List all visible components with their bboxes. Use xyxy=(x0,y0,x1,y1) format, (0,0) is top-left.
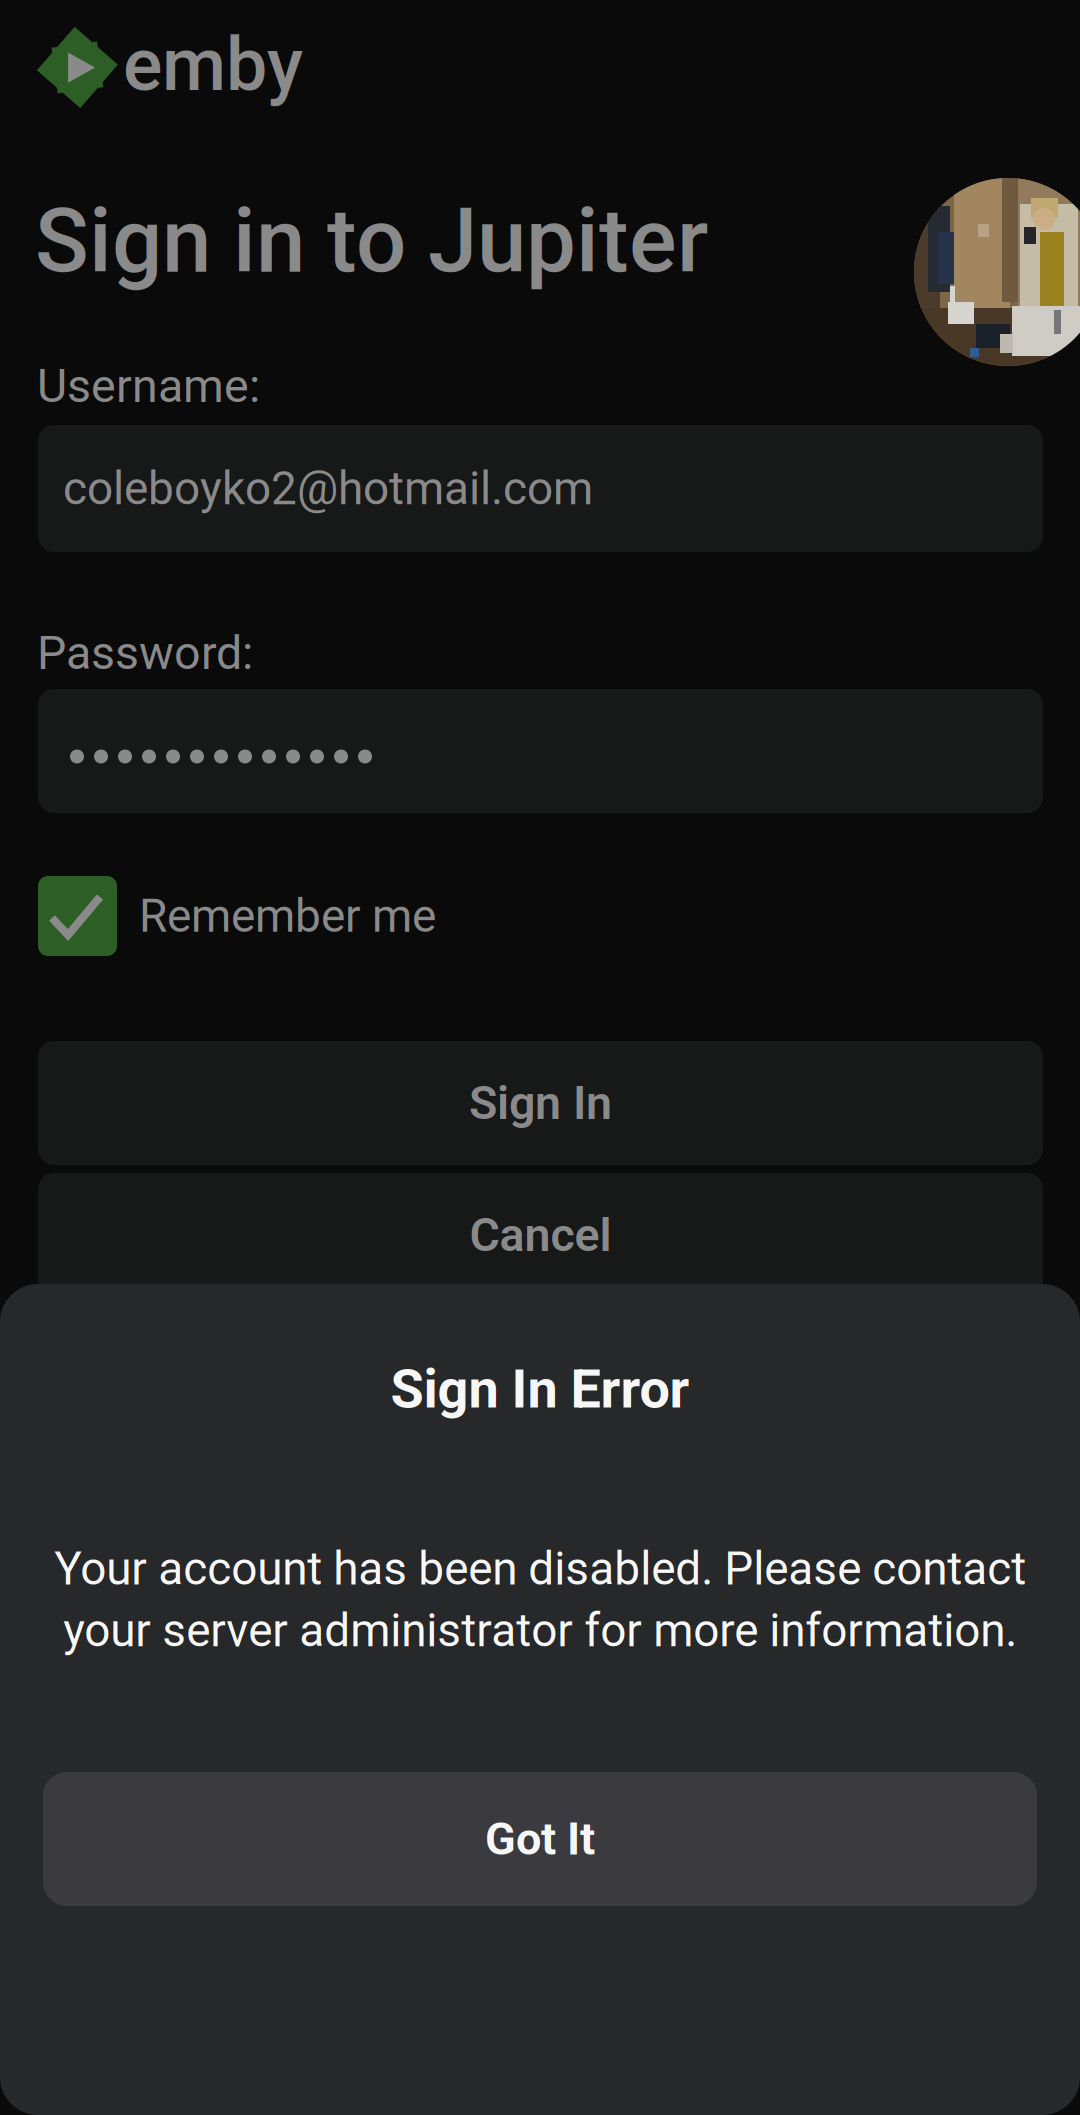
staticText: Cancel xyxy=(469,1208,611,1262)
staticText: emby xyxy=(123,22,303,108)
staticText: Sign In xyxy=(469,1076,612,1130)
staticText: Sign in to Jupiter xyxy=(35,189,708,293)
staticText: Your account has been disabled. Please c… xyxy=(54,1542,1026,1658)
staticText: Remember me xyxy=(139,889,436,943)
staticText: Username: xyxy=(37,359,260,413)
staticText: Password: xyxy=(37,626,253,680)
staticText: Got It xyxy=(485,1813,595,1865)
button[interactable]: Profile photo xyxy=(914,178,1080,366)
button[interactable]: Remember me xyxy=(38,876,658,956)
button[interactable]: Cancel xyxy=(38,1173,1043,1297)
button[interactable]: Got It xyxy=(43,1772,1037,1906)
button[interactable]: Sign In xyxy=(38,1041,1043,1165)
staticText: coleboyko2@hotmail.com xyxy=(63,462,593,515)
staticText: Sign In Error xyxy=(390,1357,689,1421)
